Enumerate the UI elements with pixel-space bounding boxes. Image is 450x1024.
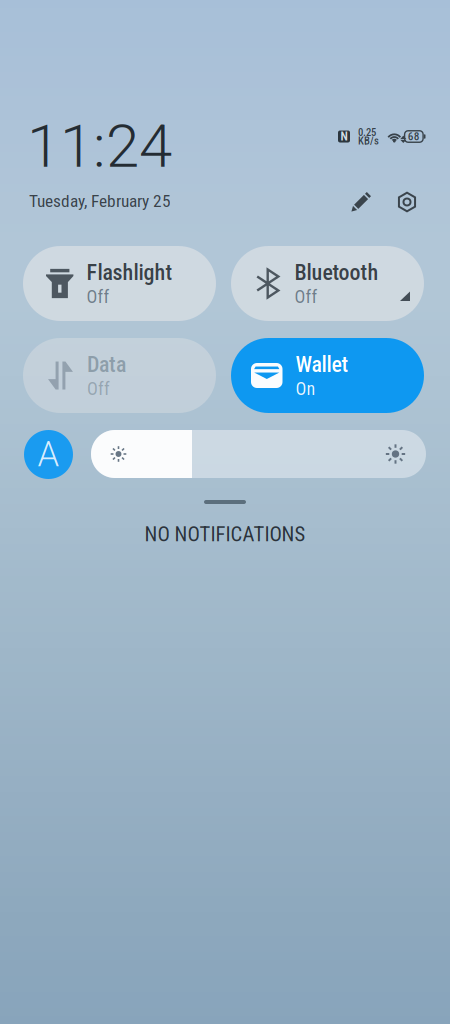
staticText: Off — [86, 286, 109, 307]
staticText: Off — [294, 286, 317, 307]
button[interactable]: Settings — [385, 182, 429, 222]
staticText: Off — [87, 378, 110, 399]
staticText: Flashlight — [86, 260, 172, 285]
staticText: Data — [87, 352, 126, 377]
button[interactable]: Bluetooth — [231, 246, 424, 321]
staticText: NO NOTIFICATIONS — [144, 522, 305, 546]
staticText: 68 — [408, 130, 420, 143]
staticText: 11:24 — [27, 111, 172, 181]
button[interactable]: Wallet — [231, 338, 424, 413]
staticText: N — [340, 129, 347, 144]
button[interactable]: Flashlight — [23, 246, 216, 321]
staticText: On — [295, 378, 315, 399]
staticText: Wallet — [295, 352, 348, 377]
staticText: Tuesday, February 25 — [29, 191, 171, 211]
staticText: KB/s — [358, 134, 379, 147]
staticText: A — [37, 434, 59, 475]
button[interactable]: Data — [23, 338, 216, 413]
button[interactable]: Edit quick settings — [339, 182, 383, 222]
button[interactable]: Automatic brightness — [24, 430, 73, 479]
staticText: Bluetooth — [294, 260, 378, 285]
button[interactable]: Brightness — [91, 430, 426, 478]
staticText: 0.25 — [358, 126, 376, 138]
